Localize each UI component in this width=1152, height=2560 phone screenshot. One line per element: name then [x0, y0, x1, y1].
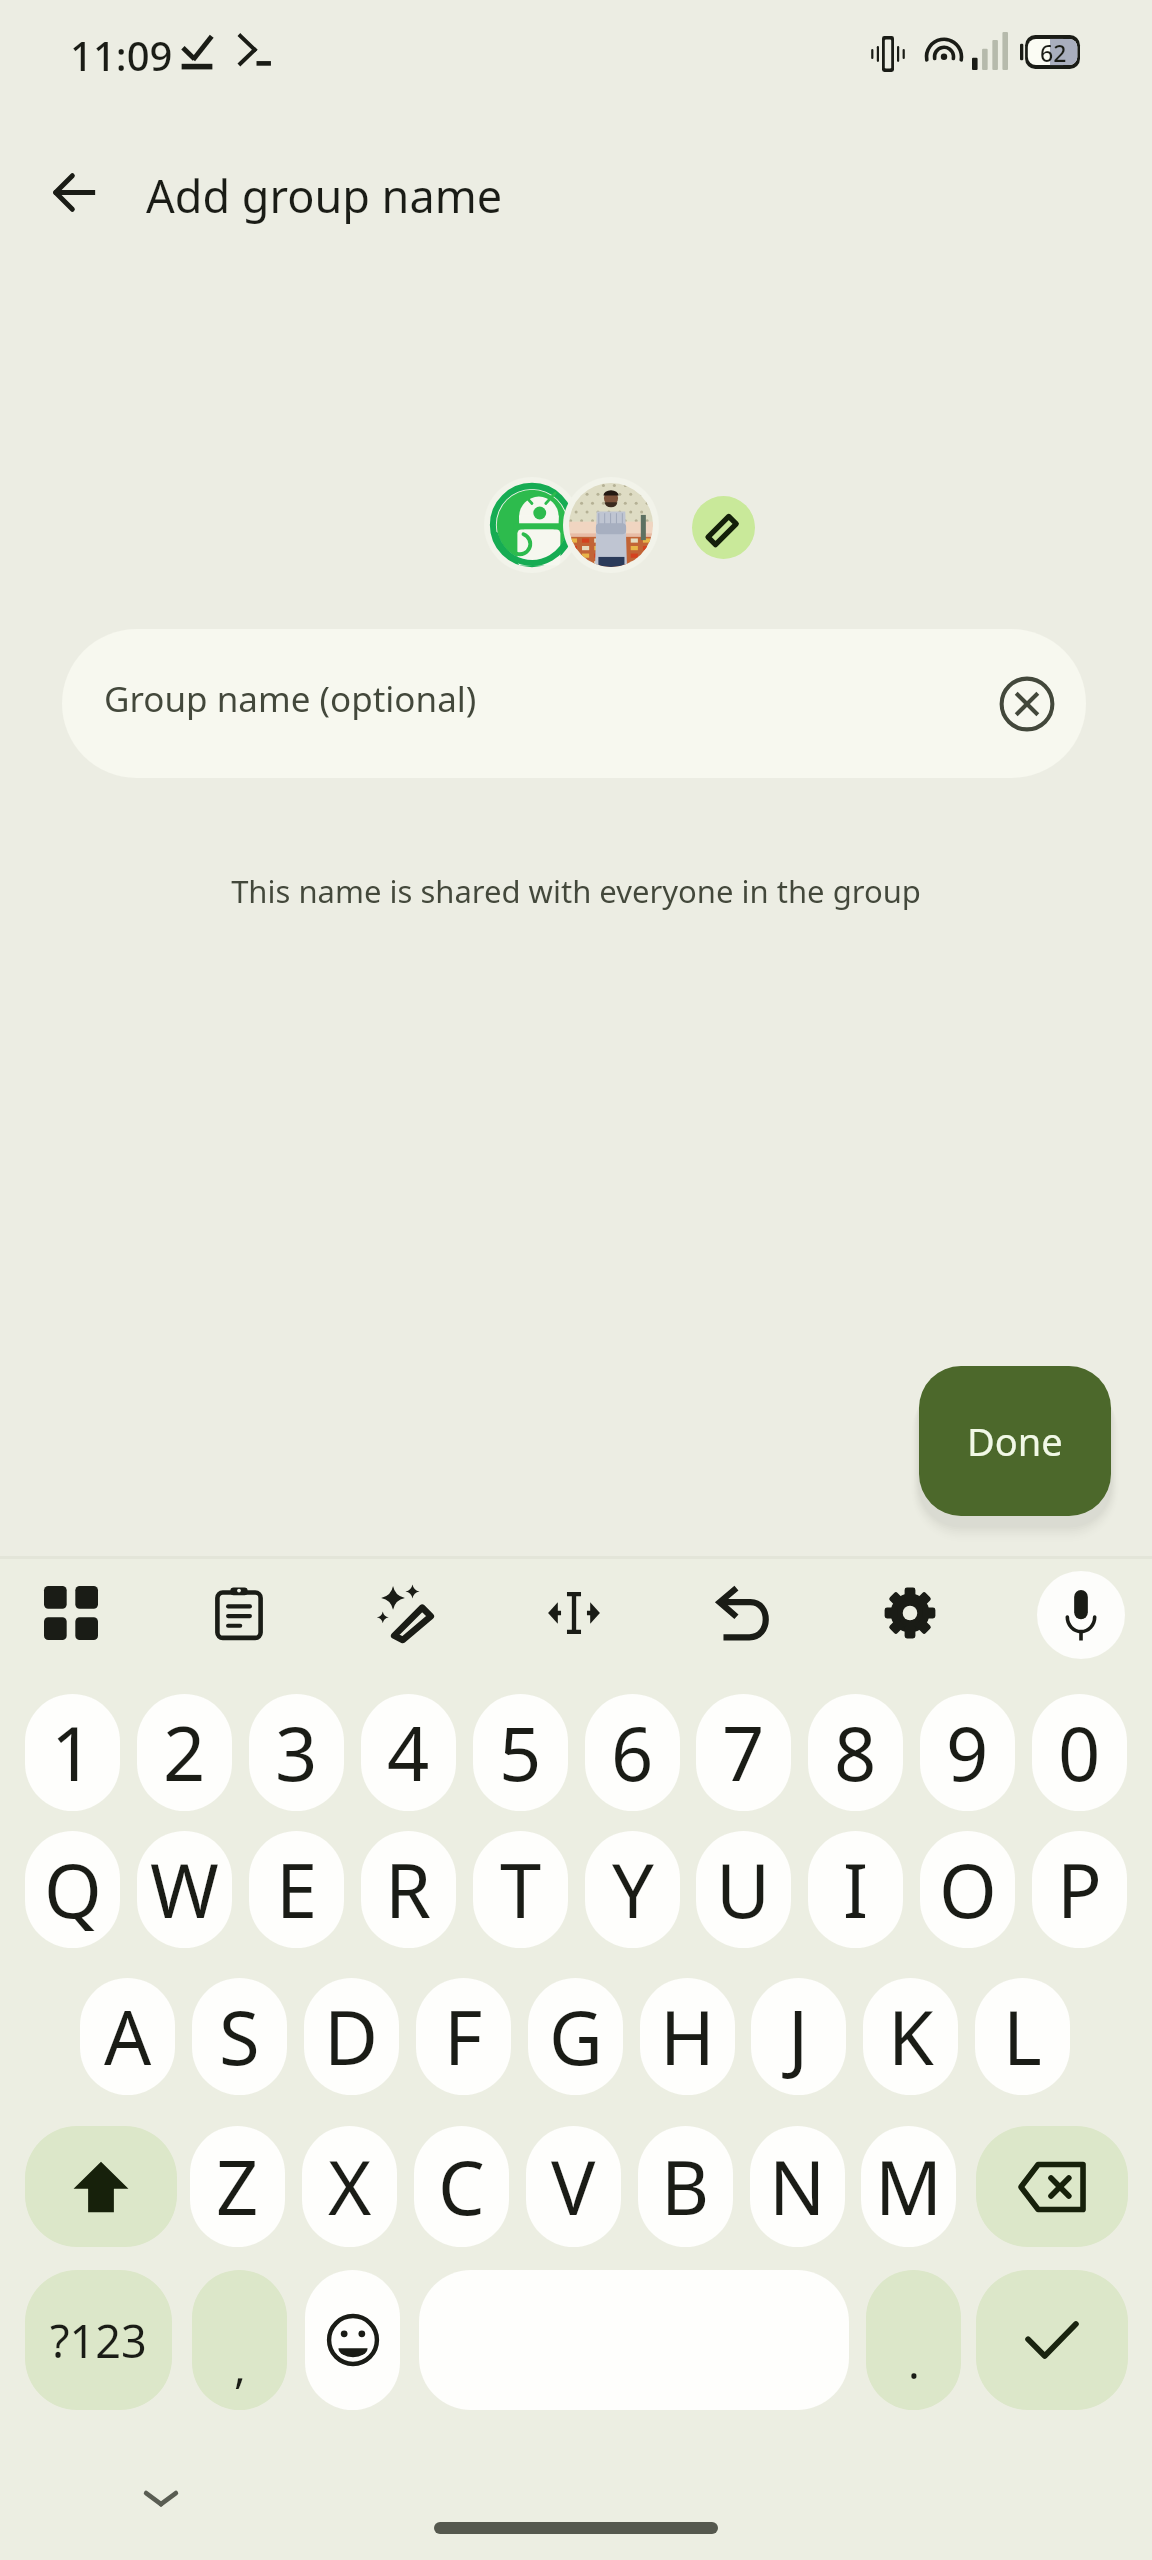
button[interactable]: Undo: [699, 1568, 789, 1658]
button[interactable]: D: [304, 1978, 399, 2095]
button[interactable]: W: [137, 1831, 232, 1948]
staticText: 11:09: [70, 28, 173, 82]
button[interactable]: N: [750, 2126, 845, 2247]
staticText: E: [276, 1839, 318, 1940]
button[interactable]: 6: [585, 1694, 680, 1811]
button[interactable]: ,: [192, 2270, 287, 2410]
staticText: 3: [275, 1702, 318, 1803]
button[interactable]: 3: [249, 1694, 344, 1811]
button[interactable]: .: [866, 2270, 961, 2410]
button[interactable]: 5: [473, 1694, 568, 1811]
button[interactable]: Voice input: [1037, 1571, 1125, 1659]
staticText: P: [1057, 1839, 1102, 1940]
staticText: 1: [51, 1702, 94, 1803]
button[interactable]: H: [640, 1978, 735, 2095]
button[interactable]: Done: [919, 1366, 1111, 1516]
button[interactable]: E: [249, 1831, 344, 1948]
button[interactable]: Edit group photo: [692, 496, 755, 559]
staticText: B: [661, 2136, 710, 2237]
button[interactable]: P: [1032, 1831, 1127, 1948]
button[interactable]: A: [80, 1978, 175, 2095]
staticText: Group name (optional): [104, 675, 477, 723]
staticText: 2: [163, 1702, 206, 1803]
button[interactable]: M: [861, 2126, 956, 2247]
button[interactable]: Group name (optional): [62, 629, 1086, 778]
button[interactable]: O: [920, 1831, 1015, 1948]
button[interactable]: Y: [585, 1831, 680, 1948]
staticText: A: [104, 1986, 152, 2087]
button[interactable]: Magic write: [361, 1568, 451, 1658]
staticText: Done: [967, 1415, 1063, 1467]
button[interactable]: U: [696, 1831, 791, 1948]
staticText: D: [324, 1986, 379, 2087]
staticText: I: [843, 1839, 869, 1940]
button[interactable]: Z: [190, 2126, 285, 2247]
button[interactable]: S: [192, 1978, 287, 2095]
staticText: M: [875, 2136, 943, 2237]
button[interactable]: J: [751, 1978, 846, 2095]
button[interactable]: Emoji: [305, 2270, 400, 2410]
button[interactable]: Hide keyboard: [130, 2467, 192, 2529]
button[interactable]: V: [526, 2126, 621, 2247]
staticText: T: [500, 1839, 542, 1940]
button[interactable]: 4: [361, 1694, 456, 1811]
button[interactable]: Back: [24, 142, 124, 242]
button[interactable]: F: [416, 1978, 511, 2095]
button[interactable]: X: [302, 2126, 397, 2247]
staticText: C: [438, 2136, 485, 2237]
staticText: 62: [1040, 37, 1067, 68]
staticText: V: [551, 2136, 596, 2237]
button[interactable]: 1: [25, 1694, 120, 1811]
staticText: N: [769, 2136, 826, 2237]
button[interactable]: Q: [25, 1831, 120, 1948]
staticText: H: [660, 1986, 715, 2087]
button[interactable]: Clear text: [988, 665, 1066, 743]
button[interactable]: Backspace: [976, 2126, 1128, 2247]
button[interactable]: T: [473, 1831, 568, 1948]
button[interactable]: Shift: [25, 2126, 177, 2247]
button[interactable]: Settings: [865, 1568, 955, 1658]
staticText: 4: [387, 1702, 430, 1803]
button[interactable]: G: [528, 1978, 623, 2095]
staticText: Q: [44, 1839, 102, 1940]
staticText: Z: [216, 2136, 259, 2237]
staticText: J: [788, 1986, 809, 2087]
button[interactable]: B: [638, 2126, 733, 2247]
button[interactable]: Space: [419, 2270, 849, 2410]
staticText: R: [385, 1839, 432, 1940]
staticText: 0: [1058, 1702, 1101, 1803]
button[interactable]: 0: [1032, 1694, 1127, 1811]
staticText: Y: [612, 1839, 654, 1940]
staticText: U: [716, 1839, 771, 1940]
button[interactable]: 2: [137, 1694, 232, 1811]
button[interactable]: K: [863, 1978, 958, 2095]
staticText: O: [939, 1839, 997, 1940]
staticText: 7: [722, 1702, 765, 1803]
button[interactable]: 9: [920, 1694, 1015, 1811]
button[interactable]: 7: [696, 1694, 791, 1811]
staticText: 9: [946, 1702, 989, 1803]
button[interactable]: 8: [808, 1694, 903, 1811]
button[interactable]: ?123: [25, 2270, 172, 2410]
button[interactable]: Enter: [976, 2270, 1128, 2410]
staticText: S: [219, 1986, 260, 2087]
staticText: Add group name: [146, 165, 503, 226]
button[interactable]: C: [414, 2126, 509, 2247]
staticText: K: [888, 1986, 934, 2087]
button[interactable]: Edit text: [529, 1568, 619, 1658]
staticText: 8: [834, 1702, 877, 1803]
staticText: G: [549, 1986, 603, 2087]
staticText: .: [908, 2332, 920, 2392]
button[interactable]: Clipboard: [194, 1568, 284, 1658]
button[interactable]: R: [361, 1831, 456, 1948]
staticText: F: [444, 1986, 483, 2087]
staticText: L: [1003, 1986, 1042, 2087]
staticText: 6: [611, 1702, 654, 1803]
button[interactable]: Apps: [26, 1568, 116, 1658]
staticText: X: [328, 2136, 372, 2237]
staticText: ,: [234, 2336, 246, 2396]
staticText: This name is shared with everyone in the…: [0, 870, 1152, 912]
staticText: 5: [499, 1702, 542, 1803]
button[interactable]: L: [975, 1978, 1070, 2095]
button[interactable]: I: [808, 1831, 903, 1948]
